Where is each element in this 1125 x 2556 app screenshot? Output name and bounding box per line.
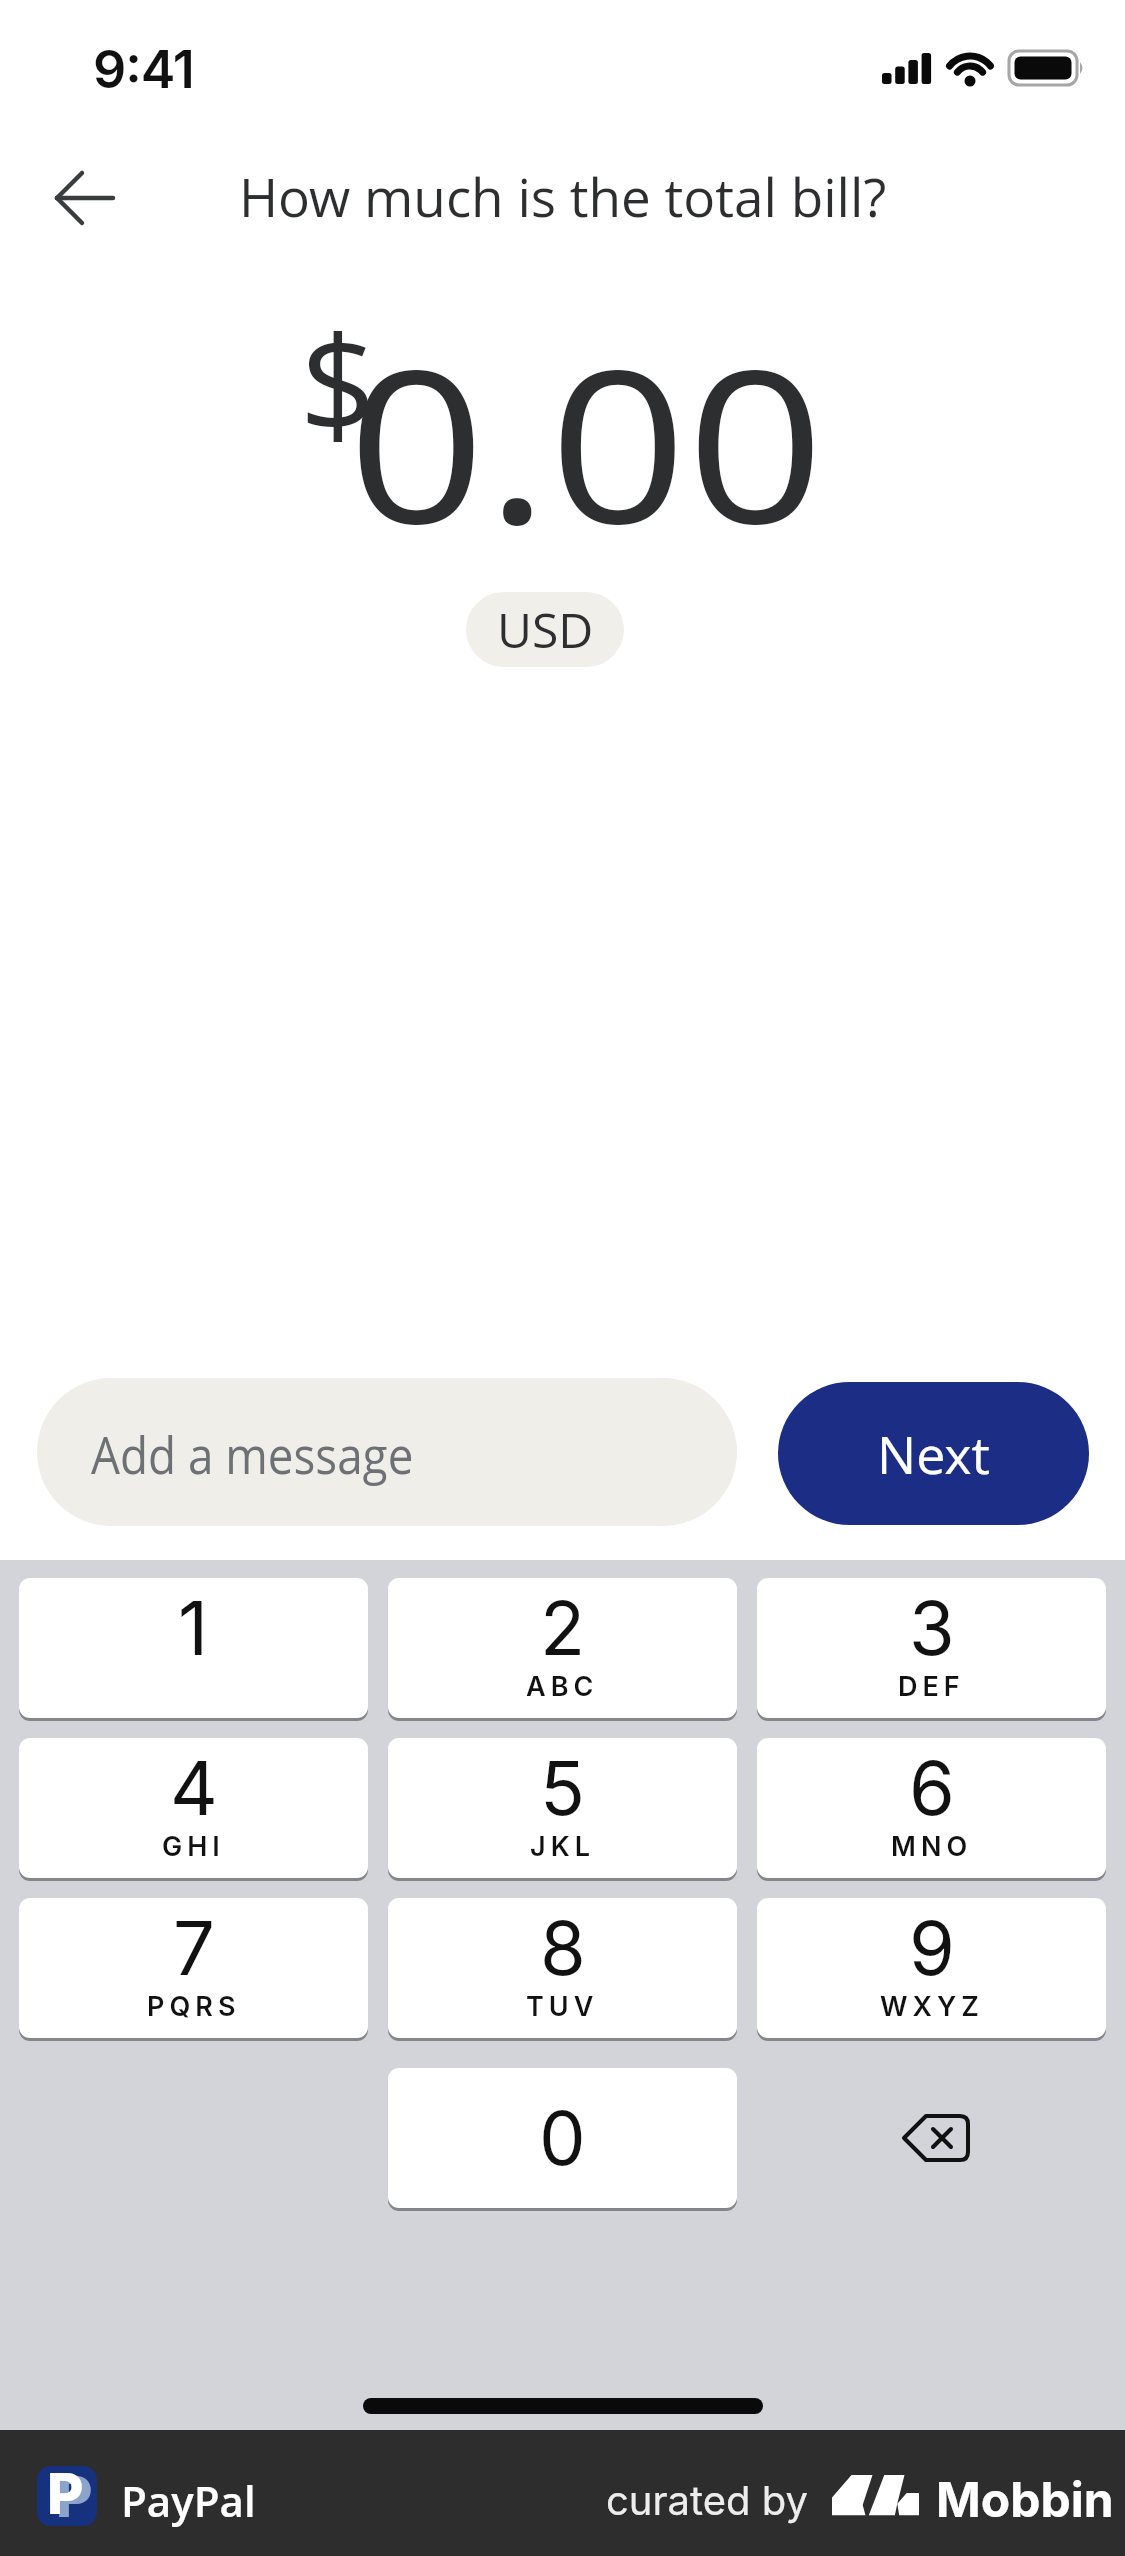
staticText: 5 xyxy=(540,1743,585,1833)
staticText: GHI xyxy=(162,1830,225,1863)
button[interactable]: USD xyxy=(466,592,624,667)
staticText: 2 xyxy=(540,1583,586,1673)
staticText: 0.00 xyxy=(348,299,825,585)
staticText: 7 xyxy=(173,1903,215,1993)
staticText: 9:41 xyxy=(93,38,194,101)
button[interactable]: 8 xyxy=(388,1898,737,2038)
staticText: P xyxy=(56,2466,93,2523)
button[interactable]: 1 xyxy=(19,1578,368,1718)
staticText: MNO xyxy=(891,1830,973,1863)
button[interactable]: 5 xyxy=(388,1738,737,1878)
staticText: 3 xyxy=(909,1583,955,1673)
button[interactable] xyxy=(40,160,130,240)
staticText: 9 xyxy=(909,1903,955,1993)
staticText: 1 xyxy=(178,1583,209,1673)
button[interactable]: 7 xyxy=(19,1898,368,2038)
staticText: 4 xyxy=(170,1743,218,1833)
staticText: 0 xyxy=(539,2093,586,2183)
button[interactable]: 2 xyxy=(388,1578,737,1718)
button[interactable]: Next xyxy=(778,1382,1089,1525)
staticText: PayPal xyxy=(121,2472,256,2529)
staticText: $ xyxy=(299,289,377,474)
staticText: Add a message xyxy=(91,1418,414,1489)
button[interactable]: 4 xyxy=(19,1738,368,1878)
staticText: DEF xyxy=(898,1670,965,1703)
staticText: Next xyxy=(877,1418,990,1489)
staticText: 6 xyxy=(909,1743,955,1833)
button[interactable]: Add a message xyxy=(37,1378,737,1526)
staticText: curated by xyxy=(606,2476,808,2524)
staticText: PQRS xyxy=(147,1990,241,2023)
staticText: JKL xyxy=(530,1830,595,1863)
staticText: Mobbin xyxy=(936,2470,1114,2528)
button[interactable]: 3 xyxy=(757,1578,1106,1718)
staticText: TUV xyxy=(526,1990,599,2023)
button[interactable]: 0 xyxy=(388,2068,737,2208)
button[interactable]: 6 xyxy=(757,1738,1106,1878)
staticText: P xyxy=(47,2466,84,2520)
staticText: How much is the total bill? xyxy=(239,160,887,232)
staticText: 8 xyxy=(540,1903,586,1993)
staticText: WXYZ xyxy=(880,1990,984,2023)
button[interactable]: 9 xyxy=(757,1898,1106,2038)
button[interactable] xyxy=(757,2068,1106,2208)
staticText: USD xyxy=(497,597,594,662)
staticText: ABC xyxy=(526,1670,599,1703)
